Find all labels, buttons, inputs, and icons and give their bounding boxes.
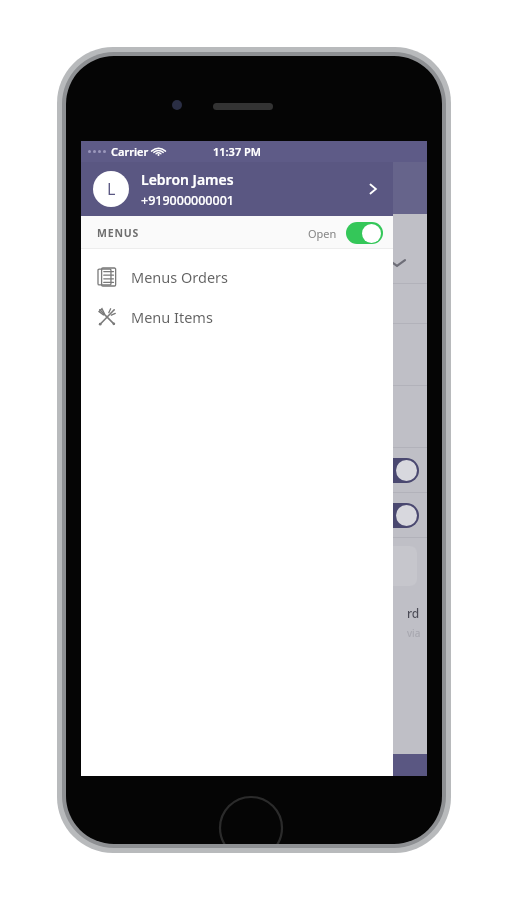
staticText: Menu Items: [131, 307, 213, 327]
staticText: via: [407, 626, 421, 640]
button[interactable]: Menus Orders: [81, 257, 393, 297]
staticText: MENUS: [97, 226, 140, 240]
staticText: 11:37 PM: [213, 144, 262, 159]
other: Open profile: [365, 181, 381, 197]
staticText: L: [107, 178, 116, 200]
staticText: rd: [407, 605, 420, 621]
staticText: Carrier: [111, 144, 149, 159]
button[interactable]: L: [81, 162, 393, 216]
staticText: Open: [308, 226, 337, 241]
button[interactable]: Menu Items: [81, 297, 393, 337]
staticText: +919000000001: [141, 192, 234, 209]
button[interactable]: Open: [308, 222, 383, 244]
other: Open toggle: [346, 222, 383, 244]
staticText: Menus Orders: [131, 267, 229, 287]
staticText: Lebron James: [141, 170, 234, 189]
